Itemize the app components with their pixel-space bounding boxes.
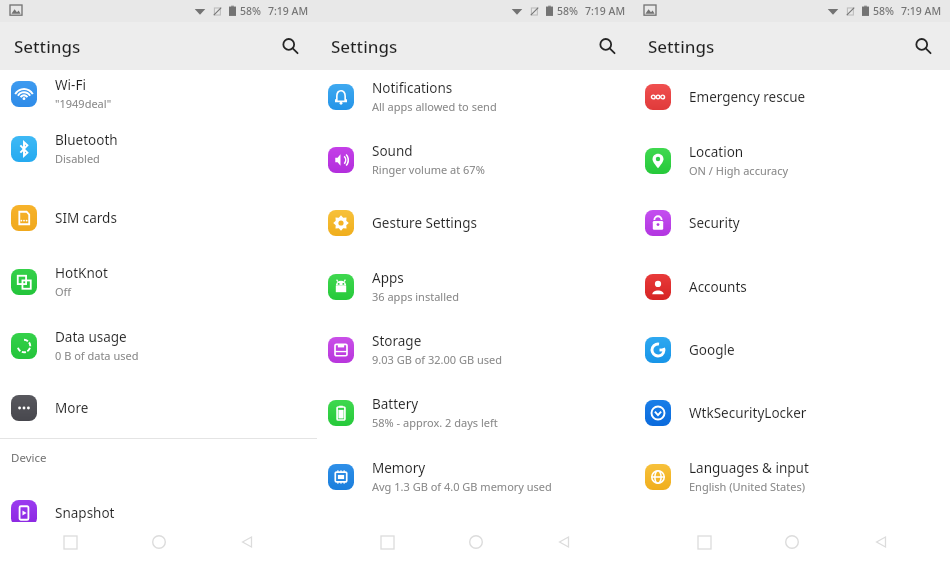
staticText: More [55,399,89,417]
staticText: 7:19 AM [268,4,309,18]
staticText: ON / High accuracy [689,163,789,178]
button[interactable]: Sound [317,133,634,185]
staticText: Security [689,214,740,232]
staticText: 7:19 AM [585,4,626,18]
staticText: Sound [372,142,413,160]
button[interactable]: Data usage [0,319,317,371]
button[interactable]: Bluetooth [0,122,317,174]
staticText: 58% [873,4,894,18]
button[interactable]: Search [906,29,940,63]
staticText: Apps [372,269,404,287]
button[interactable]: Back [862,523,900,561]
staticText: Bluetooth [55,131,118,149]
button[interactable]: Back [545,523,583,561]
button[interactable]: Emergency rescue [634,71,950,123]
staticText: Settings [648,35,715,58]
button[interactable]: Gesture Settings [317,197,634,249]
button[interactable]: Home [773,523,811,561]
button[interactable]: Recents [51,523,89,561]
staticText: Avg 1.3 GB of 4.0 GB memory used [372,479,552,494]
staticText: 9.03 GB of 32.00 GB used [372,352,503,367]
staticText: 58% [557,4,578,18]
button[interactable]: Recents [368,523,406,561]
staticText: Settings [14,35,81,58]
button[interactable]: Security [634,197,950,249]
button[interactable]: Back [228,523,266,561]
staticText: Storage [372,332,422,350]
staticText: Emergency rescue [689,88,806,106]
staticText: English (United States) [689,479,805,494]
staticText: Ringer volume at 67% [372,162,485,177]
staticText: WtkSecurityLocker [689,404,807,422]
staticText: Device [11,450,47,466]
button[interactable]: Languages & input [634,450,950,502]
button[interactable]: Battery [317,386,634,438]
staticText: Memory [372,459,426,477]
staticText: Gesture Settings [372,214,477,232]
button[interactable]: More [0,382,317,434]
staticText: HotKnot [55,264,108,282]
staticText: Accounts [689,278,747,296]
staticText: 58% [240,4,261,18]
staticText: SIM cards [55,209,117,227]
staticText: 7:19 AM [901,4,942,18]
staticText: Location [689,143,744,161]
staticText: Notifications [372,79,453,97]
button[interactable]: Google [634,324,950,376]
staticText: Data usage [55,328,127,346]
staticText: Settings [331,35,398,58]
button[interactable]: Location [634,134,950,186]
staticText: 36 apps installed [372,289,459,304]
button[interactable]: Home [457,523,495,561]
button[interactable]: Recents [685,523,723,561]
staticText: Battery [372,395,419,413]
staticText: Disabled [55,151,100,166]
button[interactable]: Search [273,29,307,63]
button[interactable]: Memory [317,450,634,502]
staticText: Off [55,284,72,299]
button[interactable]: Snapshot [0,487,317,539]
staticText: Languages & input [689,459,809,477]
staticText: 0 B of data used [55,348,139,363]
staticText: Snapshot [55,504,115,522]
button[interactable]: WtkSecurityLocker [634,387,950,439]
staticText: 58% - approx. 2 days left [372,415,498,430]
staticText: Google [689,341,735,359]
button[interactable]: Storage [317,323,634,375]
button[interactable]: Accounts [634,261,950,313]
button[interactable]: Search [590,29,624,63]
staticText: All apps allowed to send [372,99,497,114]
button[interactable]: Apps [317,260,634,312]
staticText: Wi-Fi [55,76,86,94]
button[interactable]: Notifications [317,70,634,122]
button[interactable]: HotKnot [0,255,317,307]
button[interactable]: SIM cards [0,192,317,244]
staticText: "1949deal" [55,96,112,111]
button[interactable]: Wi-Fi [0,67,317,119]
button[interactable]: Home [140,523,178,561]
